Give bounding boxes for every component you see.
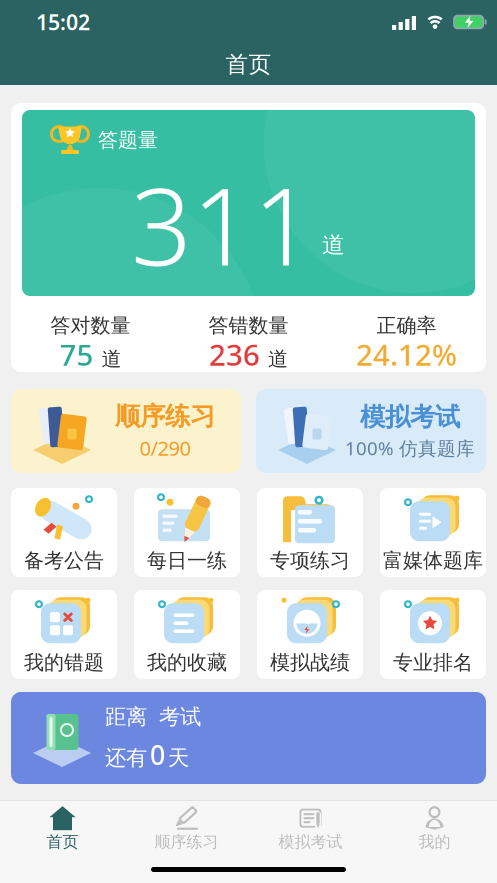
button[interactable]: 专业排名 xyxy=(380,590,486,679)
button[interactable]: 备考公告 xyxy=(11,488,117,577)
staticText: 天 xyxy=(168,745,189,771)
staticText: 我的收藏 xyxy=(147,650,227,675)
staticText: 备考公告 xyxy=(24,548,104,573)
staticText: 答题量 xyxy=(98,128,158,152)
staticText: 我的 xyxy=(418,832,450,852)
staticText: 专业排名 xyxy=(393,650,473,675)
staticText: 距离 考试 xyxy=(105,704,201,730)
staticText: 24.12% xyxy=(356,335,457,374)
button[interactable]: 我的错题 xyxy=(11,590,117,679)
staticText: 答对数量 xyxy=(50,313,130,338)
staticText: 模拟考试 xyxy=(278,832,342,852)
staticText: 顺序练习 xyxy=(154,832,218,852)
staticText: 富媒体题库 xyxy=(383,548,483,573)
staticText: 顺序练习 xyxy=(115,401,215,432)
button[interactable]: 模拟考试 xyxy=(256,389,486,473)
staticText: 0/290 xyxy=(139,435,190,461)
staticText: 我的错题 xyxy=(24,650,104,675)
staticText: 311 xyxy=(131,153,314,295)
button[interactable]: 富媒体题库 xyxy=(380,488,486,577)
staticText: 首页 xyxy=(46,832,78,852)
staticText: 每日一练 xyxy=(147,548,227,573)
staticText: 模拟考试 xyxy=(360,401,460,433)
staticText: 道 xyxy=(322,231,345,259)
staticText: 道 xyxy=(95,347,121,371)
staticText: 236 xyxy=(209,335,260,374)
button[interactable]: 我的 xyxy=(372,800,496,856)
staticText: 15:02 xyxy=(36,8,90,36)
button[interactable]: 距离 考试 xyxy=(11,692,486,784)
button[interactable]: 首页 xyxy=(0,800,124,856)
staticText: 还有 xyxy=(105,745,147,771)
staticText: 75 xyxy=(59,335,93,374)
staticText: 道 xyxy=(262,347,288,371)
button[interactable]: 模拟考试 xyxy=(248,800,372,856)
button[interactable]: 顺序练习 xyxy=(124,800,248,856)
button[interactable]: 模拟战绩 xyxy=(257,590,363,679)
staticText: 100% 仿真题库 xyxy=(345,436,475,460)
staticText: 正确率 xyxy=(376,313,436,338)
staticText: 专项练习 xyxy=(270,548,350,573)
staticText: 0 xyxy=(150,737,165,772)
button[interactable]: 专项练习 xyxy=(257,488,363,577)
button[interactable]: 我的收藏 xyxy=(134,590,240,679)
button[interactable]: 每日一练 xyxy=(134,488,240,577)
staticText: 答错数量 xyxy=(208,313,288,338)
staticText: 模拟战绩 xyxy=(270,650,350,675)
staticText: 首页 xyxy=(225,51,271,78)
button[interactable]: 顺序练习 xyxy=(11,389,241,473)
